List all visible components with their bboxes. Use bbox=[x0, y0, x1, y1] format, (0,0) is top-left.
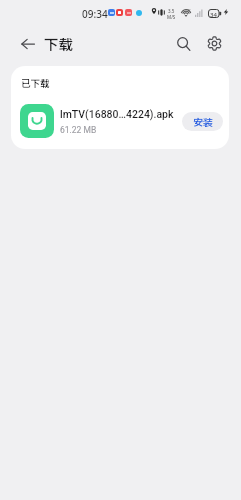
button[interactable]: 安装 bbox=[182, 112, 223, 131]
staticText: lmTV(16880…4224).apk bbox=[60, 108, 174, 120]
staticText: 下载 bbox=[44, 33, 73, 54]
staticText: 已下载 bbox=[21, 76, 50, 90]
button[interactable]: lmTV(16880…4224).apk bbox=[11, 99, 229, 143]
button[interactable]: Search bbox=[172, 32, 196, 56]
staticText: M/S bbox=[167, 14, 176, 20]
staticText: 34 bbox=[210, 11, 217, 19]
staticText: 09:34 bbox=[82, 7, 108, 21]
staticText: 3.5 bbox=[168, 8, 175, 14]
staticText: 安装 bbox=[193, 114, 213, 128]
staticText: 61.22 MB bbox=[60, 125, 97, 135]
button[interactable]: Settings bbox=[202, 31, 226, 55]
button[interactable]: Back bbox=[16, 32, 40, 56]
staticText: x bbox=[188, 7, 191, 14]
